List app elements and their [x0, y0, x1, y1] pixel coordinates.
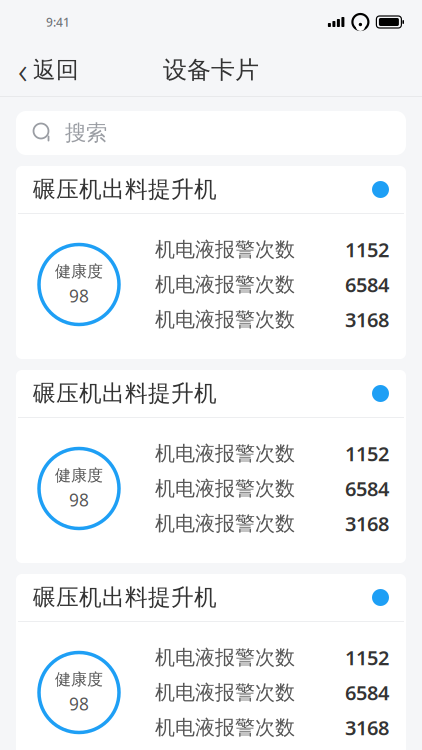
button[interactable]: 碾压机出料提升机: [16, 370, 406, 563]
staticText: 设备卡片: [163, 55, 259, 85]
staticText: 机电液报警次数: [155, 715, 295, 740]
staticText: 碾压机出料提升机: [33, 380, 217, 407]
staticText: 3168: [345, 510, 389, 537]
staticText: 6584: [345, 475, 389, 502]
staticText: 6584: [345, 271, 389, 298]
staticText: 98: [69, 284, 89, 307]
staticText: 机电液报警次数: [155, 307, 295, 332]
button[interactable]: ‹: [0, 48, 89, 92]
staticText: 9:41: [46, 14, 70, 30]
staticText: 1152: [345, 440, 389, 467]
staticText: 健康度: [55, 262, 103, 281]
staticText: 3168: [345, 714, 389, 741]
staticText: 健康度: [55, 466, 103, 485]
staticText: 1152: [345, 236, 389, 263]
button[interactable]: 碾压机出料提升机: [16, 574, 406, 750]
staticText: 机电液报警次数: [155, 511, 295, 536]
staticText: 6584: [345, 679, 389, 706]
staticText: 98: [69, 692, 89, 715]
staticText: 碾压机出料提升机: [33, 584, 217, 611]
staticText: 1152: [345, 644, 389, 671]
staticText: ‹: [18, 46, 28, 94]
staticText: 3168: [345, 306, 389, 333]
staticText: 机电液报警次数: [155, 237, 295, 262]
staticText: 机电液报警次数: [155, 476, 295, 501]
staticText: 机电液报警次数: [155, 441, 295, 466]
staticText: 搜索: [65, 120, 107, 146]
staticText: 98: [69, 488, 89, 511]
button[interactable]: 碾压机出料提升机: [16, 166, 406, 359]
staticText: 碾压机出料提升机: [33, 176, 217, 203]
staticText: 返回: [33, 56, 79, 84]
staticText: 健康度: [55, 670, 103, 689]
staticText: 机电液报警次数: [155, 680, 295, 705]
staticText: 机电液报警次数: [155, 645, 295, 670]
staticText: 机电液报警次数: [155, 272, 295, 297]
button[interactable]: 搜索: [16, 111, 406, 155]
